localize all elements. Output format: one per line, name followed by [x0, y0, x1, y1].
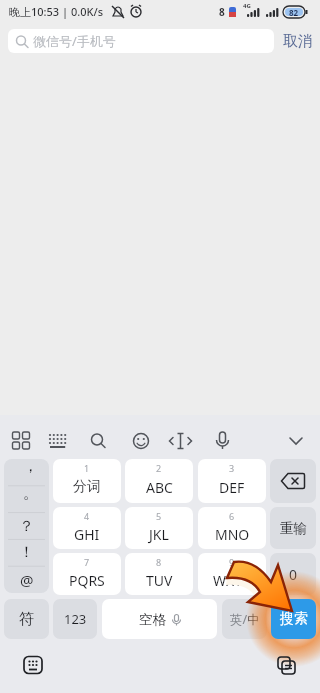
staticText: 82 — [289, 7, 299, 18]
button[interactable]: 微信号/手机号 — [8, 29, 274, 53]
staticText: 英/中 — [230, 611, 260, 628]
button[interactable]: 3 — [198, 459, 266, 503]
staticText: WXYZ — [213, 571, 251, 590]
button[interactable]: 6 — [198, 507, 266, 549]
button[interactable] — [123, 420, 159, 460]
button[interactable]: 空格 — [102, 599, 217, 639]
staticText: 6 — [229, 510, 235, 522]
button[interactable] — [40, 420, 76, 460]
button[interactable]: 8 — [125, 553, 193, 595]
staticText: 3 — [229, 462, 235, 474]
staticText: 9 — [229, 556, 235, 568]
staticText: 4 — [84, 510, 90, 522]
staticText: TUV — [146, 571, 173, 590]
staticText: 7 — [84, 556, 90, 568]
staticText: 分词 — [73, 478, 101, 496]
button[interactable] — [204, 420, 241, 460]
staticText: 8 — [219, 5, 225, 19]
staticText: ？ — [19, 517, 34, 536]
staticText: JKL — [149, 525, 169, 544]
staticText: 1 — [84, 462, 90, 474]
staticText: 符 — [19, 610, 34, 629]
button[interactable] — [280, 420, 314, 460]
button[interactable] — [162, 420, 199, 460]
button[interactable]: 搜索 — [271, 599, 316, 639]
staticText: 4G — [243, 2, 251, 10]
button[interactable]: 5 — [125, 507, 193, 549]
staticText: 微信号/手机号 — [33, 32, 116, 50]
button[interactable] — [273, 651, 301, 681]
staticText: 重输 — [280, 520, 307, 537]
staticText: DEF — [219, 478, 245, 497]
button[interactable]: 2 — [125, 459, 193, 503]
button[interactable]: 123 — [53, 599, 97, 639]
staticText: 晚上10:53 | 0.0K/s — [9, 4, 104, 19]
button[interactable] — [4, 420, 37, 460]
staticText: 123 — [64, 610, 87, 628]
button[interactable] — [20, 651, 48, 681]
staticText: GHI — [74, 525, 100, 544]
staticText: 8 — [156, 556, 162, 568]
button[interactable]: 1 — [53, 459, 121, 503]
staticText: PQRS — [69, 571, 105, 590]
staticText: 。 — [23, 484, 38, 503]
staticText: 空格 — [139, 611, 166, 628]
staticText: ， — [23, 459, 38, 476]
button[interactable]: 4 — [53, 507, 121, 549]
staticText: 搜索 — [280, 610, 308, 628]
staticText: ！ — [19, 543, 34, 562]
button[interactable]: 英/中 — [222, 599, 267, 639]
staticText: 2 — [156, 462, 162, 474]
staticText: ABC — [146, 478, 173, 497]
button[interactable]: 9 — [198, 553, 266, 595]
button[interactable]: 取消 — [280, 29, 316, 53]
button[interactable]: ， — [4, 459, 49, 593]
button[interactable]: 符 — [4, 599, 49, 639]
button[interactable] — [80, 420, 116, 460]
staticText: 0 — [289, 565, 298, 584]
button[interactable]: 重输 — [270, 507, 316, 549]
button[interactable]: 0 — [270, 553, 316, 595]
staticText: 取消 — [283, 32, 313, 51]
staticText: 5 — [156, 510, 162, 522]
staticText: MNO — [215, 525, 250, 544]
button[interactable]: 7 — [53, 553, 121, 595]
staticText: @ — [20, 570, 34, 590]
button[interactable] — [270, 459, 316, 503]
